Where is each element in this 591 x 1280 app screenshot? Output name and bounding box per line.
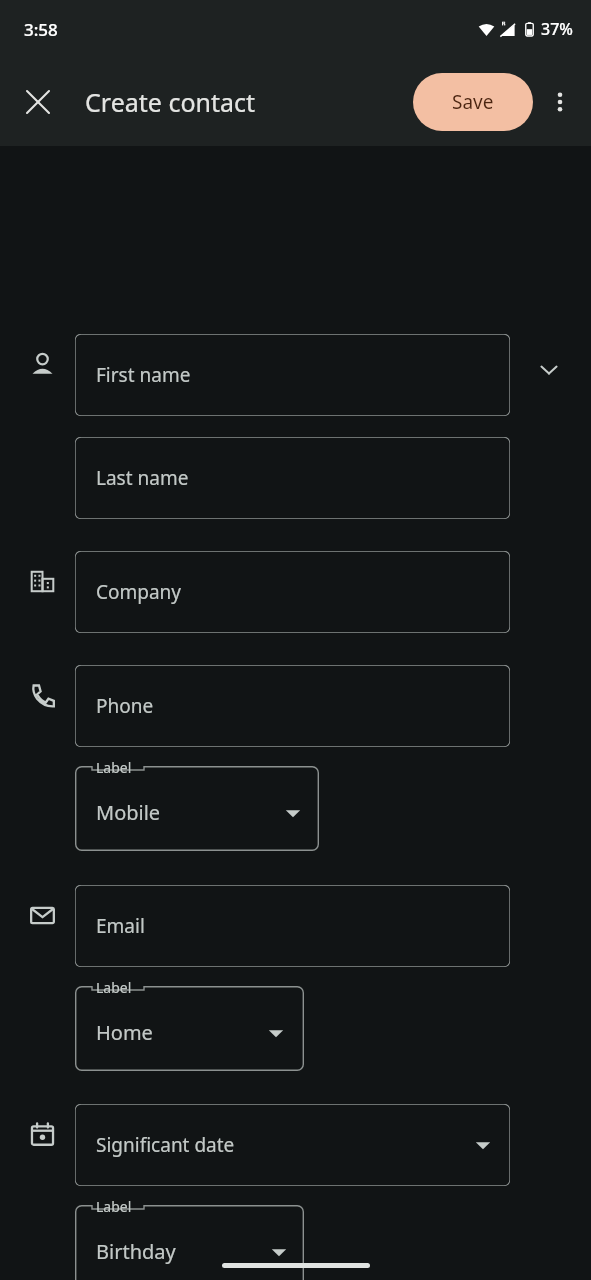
- button[interactable]: Company: [75, 551, 510, 633]
- button[interactable]: Label: [75, 1205, 304, 1280]
- button[interactable]: More options: [535, 77, 585, 127]
- button[interactable]: Expand name fields: [527, 348, 571, 392]
- button[interactable]: Label: [75, 986, 304, 1071]
- button[interactable]: Significant date: [75, 1104, 510, 1186]
- staticText: Email: [96, 913, 145, 939]
- staticText: 3:58: [24, 18, 58, 41]
- staticText: Mobile: [96, 799, 161, 826]
- staticText: Create contact: [85, 85, 256, 119]
- button[interactable]: Label: [75, 766, 319, 851]
- staticText: Label: [96, 758, 132, 777]
- staticText: Significant date: [96, 1132, 235, 1158]
- staticText: Phone: [96, 693, 154, 719]
- staticText: Label: [96, 1197, 132, 1216]
- button[interactable]: Phone: [75, 665, 510, 747]
- staticText: Home: [96, 1019, 153, 1046]
- button[interactable]: First name: [75, 334, 510, 416]
- staticText: Label: [96, 978, 132, 997]
- button[interactable]: Email: [75, 885, 510, 967]
- button[interactable]: Last name: [75, 437, 510, 519]
- button[interactable]: Save: [413, 73, 533, 131]
- staticText: Last name: [96, 465, 189, 491]
- staticText: Save: [452, 89, 494, 115]
- staticText: Company: [96, 579, 182, 605]
- staticText: First name: [96, 362, 191, 388]
- button[interactable]: Close: [10, 74, 66, 130]
- staticText: 37%: [541, 18, 573, 40]
- staticText: Birthday: [96, 1238, 176, 1265]
